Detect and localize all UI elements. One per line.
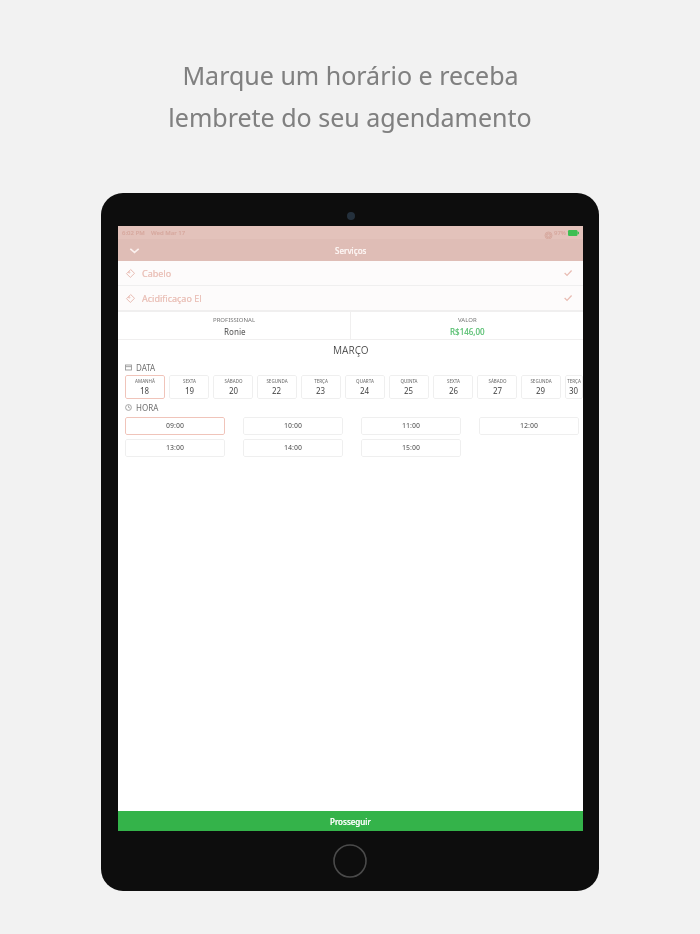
staticText: 14:00 (284, 443, 302, 453)
button[interactable]: VALOR (351, 312, 583, 340)
staticText: VALOR (458, 316, 477, 324)
button[interactable]: 11:00 (361, 417, 461, 435)
staticText: 23 (316, 385, 326, 396)
button[interactable]: 10:00 (243, 417, 343, 435)
staticText: PROFISSIONAL (213, 316, 256, 324)
button[interactable]: QUINTA (389, 375, 429, 399)
button[interactable]: SEGUNDA (521, 375, 561, 399)
staticText: 18 (140, 385, 150, 396)
button[interactable]: Cabelo (118, 261, 583, 285)
staticText: 30 (569, 385, 579, 396)
staticText: 22 (272, 385, 282, 396)
button[interactable]: TERÇA (301, 375, 341, 399)
staticText: 11:00 (402, 421, 420, 431)
staticText: 24 (360, 385, 370, 396)
staticText: Marque um horário e receba (182, 58, 519, 92)
button[interactable]: 13:00 (125, 439, 225, 457)
staticText: SEXTA (447, 378, 460, 384)
staticText: Cabelo (142, 267, 172, 279)
button[interactable]: SÁBADO (213, 375, 253, 399)
button[interactable]: 09:00 (125, 417, 225, 435)
button[interactable]: Fechar (126, 242, 142, 258)
staticText: 12:00 (520, 421, 538, 431)
button[interactable]: SEXTA (433, 375, 473, 399)
staticText: 10:00 (284, 421, 302, 431)
button[interactable]: SÁBADO (477, 375, 517, 399)
staticText: 19 (185, 385, 195, 396)
button[interactable]: PROFISSIONAL (118, 312, 350, 340)
staticText: SEXTA (183, 378, 196, 384)
staticText: QUINTA (400, 378, 418, 384)
staticText: Ronie (224, 326, 246, 337)
staticText: 26 (449, 385, 459, 396)
staticText: Wed Mar 17 (151, 229, 186, 237)
button[interactable]: TERÇA (565, 375, 583, 399)
staticText: SÁBADO (488, 378, 507, 384)
staticText: 97% (554, 229, 566, 237)
staticText: R$146,00 (450, 326, 485, 337)
staticText: MARÇO (333, 343, 369, 357)
staticText: AMANHÃ (135, 378, 155, 384)
button[interactable]: Prosseguir (118, 811, 583, 831)
button[interactable]: 14:00 (243, 439, 343, 457)
staticText: 09:00 (166, 421, 184, 431)
button[interactable]: QUARTA (345, 375, 385, 399)
staticText: 13:00 (166, 443, 184, 453)
staticText: lembrete do seu agendamento (168, 100, 532, 134)
staticText: 27 (493, 385, 503, 396)
staticText: 29 (536, 385, 546, 396)
button[interactable]: AMANHÃ (125, 375, 165, 399)
staticText: HORA (136, 402, 159, 413)
staticText: SÁBADO (224, 378, 243, 384)
button[interactable]: Acidificaçao El (118, 286, 583, 310)
button[interactable]: Fechar (118, 239, 583, 261)
staticText: 15:00 (402, 443, 420, 453)
button[interactable]: SEXTA (169, 375, 209, 399)
button[interactable]: SEGUNDA (257, 375, 297, 399)
button[interactable]: 15:00 (361, 439, 461, 457)
staticText: DATA (136, 362, 156, 373)
staticText: QUARTA (356, 378, 374, 384)
staticText: Serviços (335, 245, 367, 256)
staticText: 25 (404, 385, 414, 396)
staticText: SEGUNDA (530, 378, 552, 384)
staticText: SEGUNDA (266, 378, 288, 384)
staticText: 6:02 PM (122, 229, 145, 237)
button[interactable]: 12:00 (479, 417, 579, 435)
staticText: Prosseguir (330, 816, 371, 827)
staticText: Acidificaçao El (142, 292, 202, 304)
staticText: 20 (229, 385, 239, 396)
staticText: TERÇA (567, 378, 581, 384)
staticText: TERÇA (314, 378, 328, 384)
